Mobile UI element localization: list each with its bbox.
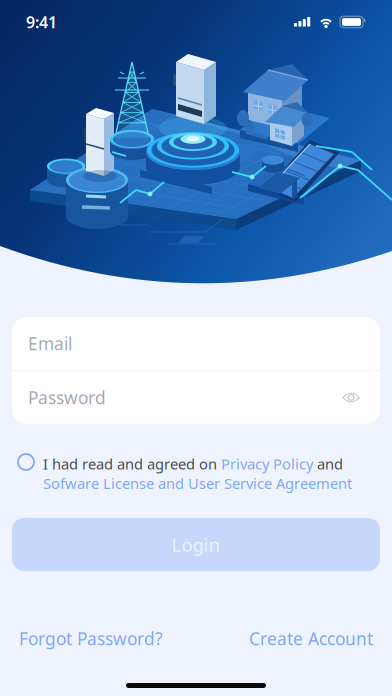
staticText: 9:41 [26, 11, 57, 33]
button[interactable]: Login [12, 518, 380, 571]
staticText: Password [28, 386, 106, 409]
staticText: I had read and agreed on Privacy Policy … [43, 454, 352, 493]
button[interactable]: Create Account [249, 627, 373, 650]
staticText: Create Account [249, 627, 373, 650]
staticText: Login [171, 532, 220, 557]
staticText: Forgot Password? [19, 627, 163, 650]
button[interactable]: Forgot Password? [19, 627, 163, 650]
staticText: Email [28, 332, 72, 355]
button[interactable]: Agree to terms [18, 454, 34, 470]
button[interactable]: Show password [338, 387, 364, 407]
